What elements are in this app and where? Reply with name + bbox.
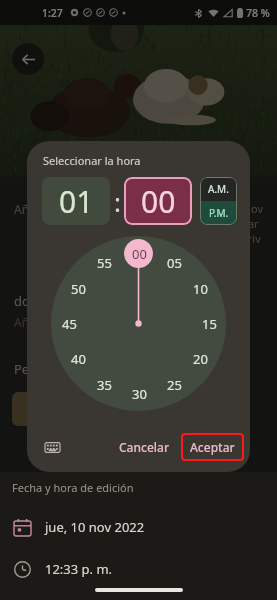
staticText: 15 (202, 315, 217, 333)
staticText: jue, 10 nov 2022 (45, 518, 145, 536)
button[interactable]: 25 (159, 370, 189, 400)
button[interactable]: 50 (63, 274, 93, 304)
staticText: 78 % (246, 6, 270, 20)
button[interactable]: Cambiar a modo de entrada de texto (39, 434, 65, 460)
button[interactable]: 20 (185, 344, 215, 374)
button[interactable]: 15 (194, 309, 224, 339)
staticText: Aceptar (190, 439, 235, 455)
staticText: 30 (132, 385, 147, 403)
button[interactable]: P.M. (200, 201, 237, 225)
button[interactable]: 35 (89, 370, 119, 400)
button[interactable]: 10 (185, 274, 215, 304)
staticText: Aña (14, 201, 36, 217)
button[interactable]: 00 (124, 239, 154, 269)
staticText: 35 (97, 376, 112, 394)
staticText: Mov (241, 201, 263, 216)
staticText: 1:27 (42, 6, 63, 20)
staticText: Per (14, 360, 35, 378)
staticText: 25 (167, 376, 182, 394)
staticText: 00 (132, 245, 147, 263)
staticText: Cancelar (119, 439, 169, 455)
button[interactable]: Cancelar (109, 433, 179, 461)
staticText: 55 (97, 254, 112, 272)
staticText: 10 (193, 280, 208, 298)
button[interactable]: 45 (54, 309, 84, 339)
staticText: Seleccionar la hora (43, 153, 141, 168)
button[interactable]: 55 (89, 248, 119, 278)
staticText: 50 (71, 280, 86, 298)
staticText: 45 (62, 315, 77, 333)
button[interactable]: 30 (124, 379, 154, 409)
staticText: A.M. (208, 182, 229, 196)
button[interactable]: 00 (124, 177, 192, 225)
staticText: Añ (14, 314, 30, 330)
button[interactable]: Aceptar (181, 433, 244, 461)
staticText: priv (241, 231, 261, 246)
staticText: Fecha y hora de edición (12, 480, 134, 495)
button[interactable]: 12:33 p. m. (0, 558, 277, 580)
button[interactable]: 01 (42, 177, 110, 225)
button[interactable]: Atrás (12, 43, 44, 75)
staticText: Car (241, 216, 259, 231)
button[interactable]: 40 (63, 344, 93, 374)
button[interactable]: A.M. (200, 177, 237, 201)
button[interactable]: jue, 10 nov 2022 (0, 516, 277, 538)
staticText: dou (14, 292, 38, 310)
staticText: 01 (59, 181, 94, 222)
staticText: P.M. (209, 206, 229, 220)
staticText: 20 (193, 350, 208, 368)
staticText: 00 (141, 181, 176, 222)
button[interactable]: 05 (159, 248, 189, 278)
staticText: 40 (71, 350, 86, 368)
staticText: 05 (167, 254, 182, 272)
staticText: 12:33 p. m. (45, 560, 113, 578)
staticText: : (114, 184, 121, 219)
